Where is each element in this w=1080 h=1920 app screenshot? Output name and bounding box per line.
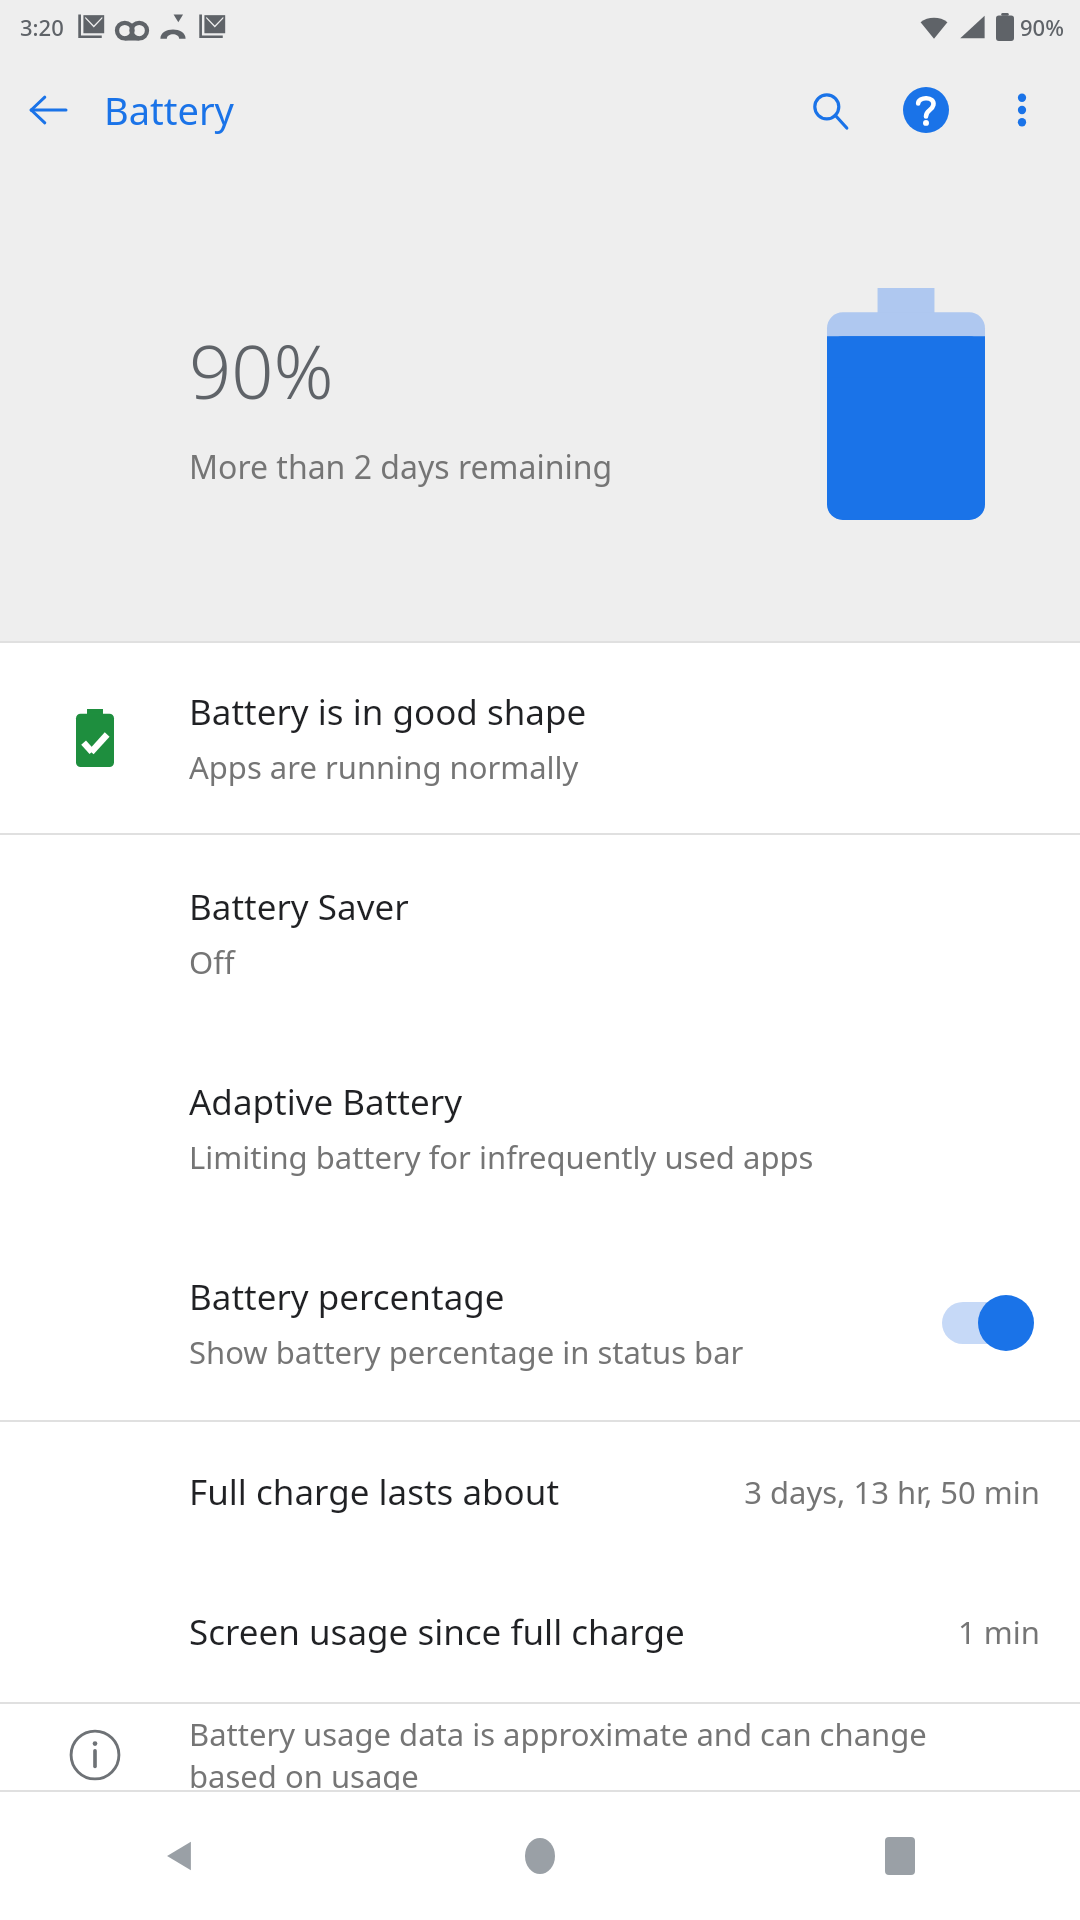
button[interactable]: Search (782, 62, 878, 158)
button[interactable]: Help (878, 62, 974, 158)
staticText: Battery usage data is approximate and ca… (189, 1713, 927, 1755)
button[interactable]: More options (974, 62, 1070, 158)
staticText: 90% (1020, 12, 1064, 42)
button[interactable]: Recent apps (720, 1792, 1080, 1920)
staticText: Limiting battery for infrequently used a… (189, 1136, 814, 1178)
staticText: based on usage (189, 1755, 419, 1797)
staticText: Battery Saver (189, 883, 409, 931)
staticText: Full charge lasts about (189, 1468, 560, 1516)
staticText: Apps are running normally (189, 746, 579, 788)
staticText: Battery (104, 84, 234, 136)
staticText: 90% (189, 320, 334, 421)
staticText: 3 days, 13 hr, 50 min (744, 1471, 1040, 1513)
staticText: Battery is in good shape (189, 688, 587, 736)
staticText: More than 2 days remaining (189, 445, 613, 489)
button[interactable]: Back (0, 62, 96, 158)
staticText: Screen usage since full charge (189, 1608, 685, 1656)
button[interactable]: Battery percentage (0, 1225, 1080, 1420)
staticText: 3:20 (20, 12, 64, 42)
button[interactable]: Screen usage since full charge (0, 1562, 1080, 1702)
button[interactable]: Full charge lasts about (0, 1422, 1080, 1562)
staticText: Battery percentage (189, 1273, 505, 1321)
staticText: 1 min (958, 1611, 1040, 1653)
button[interactable]: Adaptive Battery (0, 1030, 1080, 1225)
button[interactable]: Battery Saver (0, 835, 1080, 1030)
staticText: Off (189, 941, 235, 983)
staticText: Adaptive Battery (189, 1078, 463, 1126)
button[interactable]: Battery is in good shape (0, 643, 1080, 833)
button[interactable]: Back (0, 1792, 360, 1920)
staticText: Show battery percentage in status bar (189, 1331, 744, 1373)
button[interactable]: Home (360, 1792, 720, 1920)
